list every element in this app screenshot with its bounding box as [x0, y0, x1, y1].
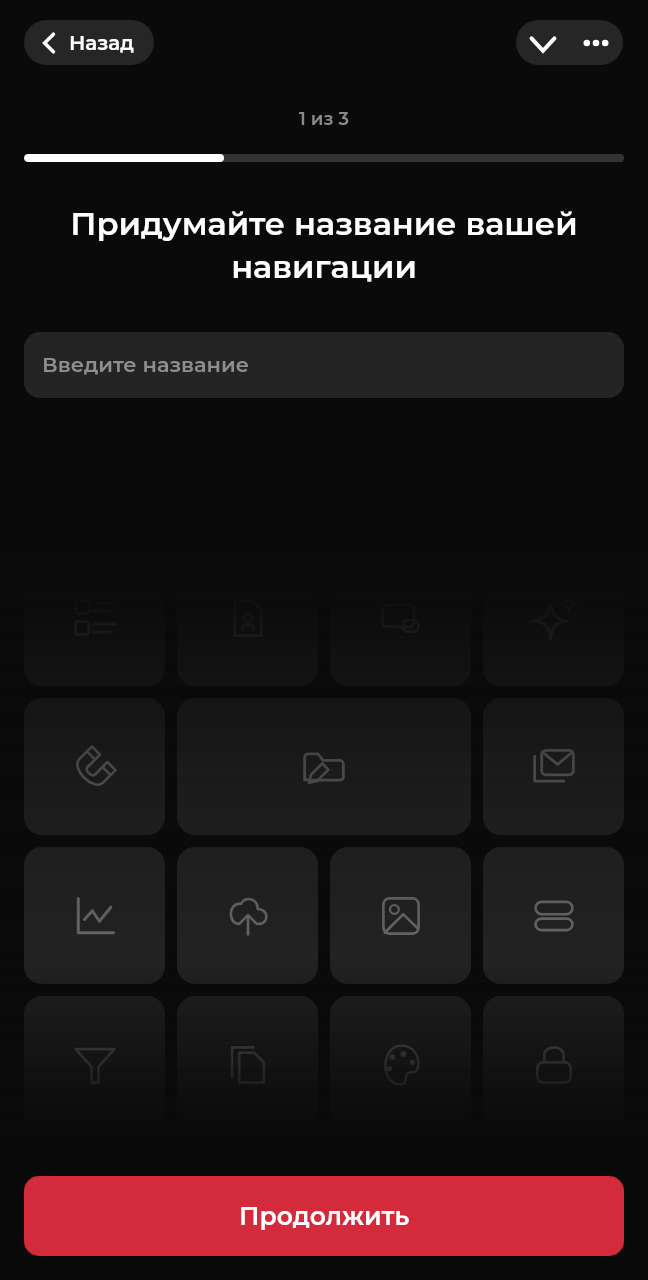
- staticText: Продолжить: [239, 1201, 410, 1231]
- button[interactable]: [177, 996, 318, 1133]
- button[interactable]: [330, 996, 471, 1133]
- button[interactable]: Продолжить: [24, 1176, 624, 1256]
- button[interactable]: [483, 996, 624, 1133]
- staticText: 1 из 3: [299, 108, 349, 130]
- button[interactable]: [483, 847, 624, 984]
- button[interactable]: Collapse: [516, 20, 569, 65]
- staticText: Придумайте название вашей навигации: [36, 204, 612, 286]
- button[interactable]: [24, 847, 165, 984]
- button[interactable]: [24, 996, 165, 1133]
- button[interactable]: [177, 698, 471, 835]
- button[interactable]: Введите название: [24, 332, 624, 398]
- button[interactable]: Назад: [24, 20, 154, 65]
- staticText: Введите название: [42, 352, 250, 378]
- button[interactable]: [330, 847, 471, 984]
- button[interactable]: [483, 698, 624, 835]
- button[interactable]: More options: [569, 20, 623, 65]
- button[interactable]: [24, 698, 165, 835]
- button[interactable]: [177, 847, 318, 984]
- staticText: Назад: [69, 31, 134, 55]
